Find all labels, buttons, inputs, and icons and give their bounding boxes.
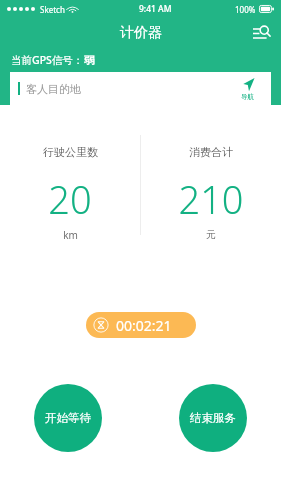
staticText: 100% (235, 4, 256, 15)
button[interactable]: 导航 (227, 77, 267, 101)
staticText: 计价器 (120, 24, 162, 42)
button[interactable]: 结束服务 (179, 384, 247, 452)
staticText: 弱 (84, 54, 95, 67)
button[interactable]: 客人目的地 (10, 72, 271, 105)
staticText: 导航 (241, 93, 254, 101)
staticText: 当前GPS信号： (11, 53, 84, 67)
staticText: 客人目的地 (26, 82, 81, 96)
staticText: 20 (48, 173, 92, 225)
staticText: 结束服务 (190, 411, 236, 425)
staticText: 消费合计 (189, 145, 233, 159)
button[interactable]: 开始等待 (34, 384, 102, 452)
staticText: 00:02:21 (116, 316, 172, 335)
button[interactable]: 00:02:21 (86, 312, 196, 338)
staticText: 行驶公里数 (43, 145, 98, 159)
staticText: km (63, 228, 78, 240)
staticText: Sketch (40, 4, 65, 15)
staticText: 210 (178, 173, 244, 225)
staticText: 元 (206, 228, 216, 240)
staticText: 开始等待 (45, 411, 91, 425)
staticText: 9:41 AM (139, 3, 172, 15)
button[interactable]: 订单查询 (248, 20, 274, 46)
